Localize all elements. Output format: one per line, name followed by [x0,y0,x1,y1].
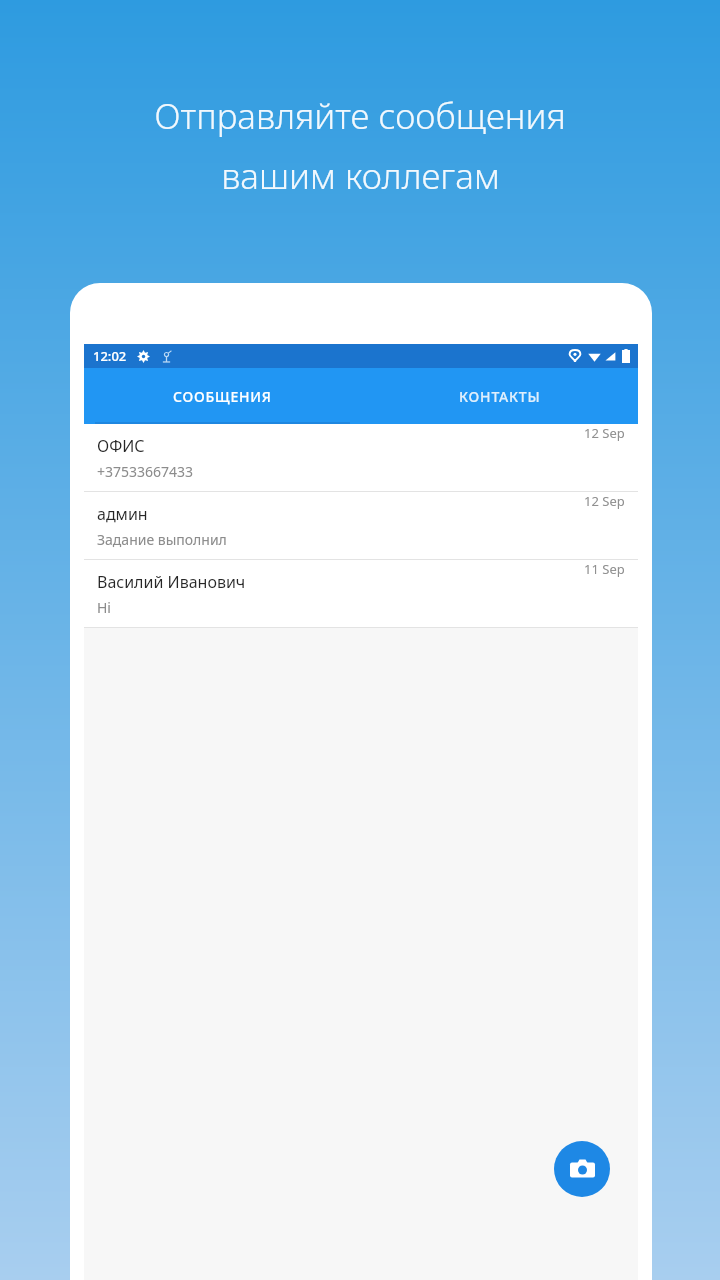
staticText: Отправляйте сообщения [154,92,566,140]
staticText: ОФИС [97,435,145,457]
button[interactable]: СООБЩЕНИЯ [84,368,361,424]
staticText: вашим коллегам [221,152,500,200]
staticText: Задание выполнил [97,530,227,549]
button[interactable]: Василий Иванович [84,560,638,628]
button[interactable]: админ [84,492,638,560]
button[interactable]: New message with camera [554,1141,610,1197]
staticText: 12 Sep [584,424,625,442]
staticText: Василий Иванович [97,571,246,593]
staticText: 12 Sep [584,492,625,510]
staticText: КОНТАКТЫ [459,387,541,406]
staticText: админ [97,503,148,525]
staticText: СООБЩЕНИЯ [173,387,272,406]
staticText: +37533667433 [97,462,194,481]
staticText: Hi [97,598,111,617]
button[interactable]: ОФИС [84,424,638,492]
staticText: 11 Sep [584,560,625,578]
staticText: 12:02 [93,347,127,365]
button[interactable]: КОНТАКТЫ [361,368,638,424]
